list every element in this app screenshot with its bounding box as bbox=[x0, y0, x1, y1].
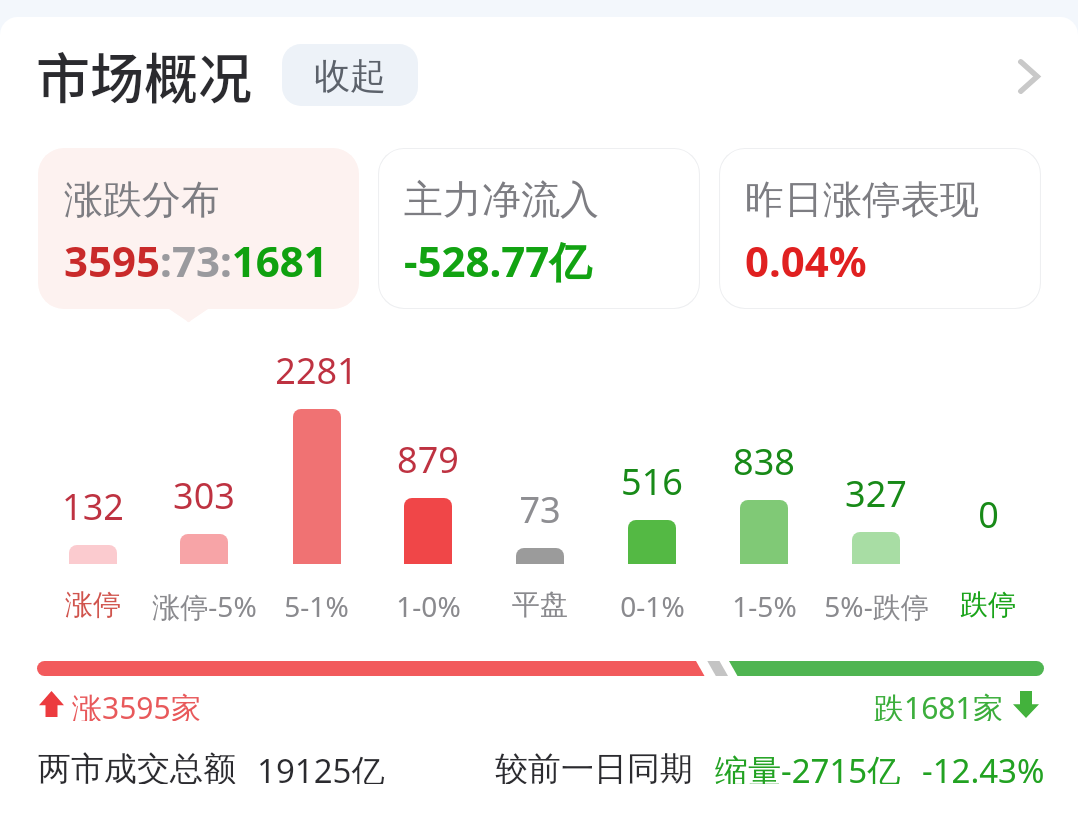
button[interactable]: 516 bbox=[596, 335, 708, 606]
button[interactable]: 879 bbox=[372, 335, 484, 606]
button[interactable]: 838 bbox=[708, 335, 820, 606]
staticText: 主力净流入 bbox=[404, 175, 599, 224]
staticText: 1-0% bbox=[396, 587, 461, 625]
staticText: 0.04% bbox=[745, 232, 867, 289]
button[interactable]: 73 bbox=[484, 335, 596, 606]
staticText: 3595:73:1681 bbox=[64, 232, 328, 289]
staticText: 327 bbox=[845, 469, 907, 518]
staticText: 市场概况 bbox=[36, 36, 252, 110]
staticText: 0-1% bbox=[620, 587, 685, 625]
staticText: 132 bbox=[62, 482, 124, 531]
staticText: 收起 bbox=[314, 53, 386, 98]
staticText: 涨停-5% bbox=[152, 587, 257, 625]
button[interactable]: 收起 bbox=[282, 44, 418, 106]
staticText: 涨3595家 bbox=[72, 687, 201, 721]
button[interactable]: 132 bbox=[37, 335, 148, 606]
staticText: 19125亿 bbox=[257, 748, 385, 784]
button[interactable]: 涨跌分布 bbox=[38, 148, 359, 309]
staticText: 516 bbox=[621, 457, 683, 506]
staticText: -12.43% bbox=[922, 748, 1045, 784]
staticText: 5-1% bbox=[284, 587, 349, 625]
button[interactable]: 主力净流入 bbox=[378, 148, 700, 309]
button[interactable]: More bbox=[1001, 52, 1057, 108]
staticText: 缩量-2715亿 bbox=[715, 748, 901, 784]
staticText: 73 bbox=[519, 485, 561, 534]
staticText: 838 bbox=[733, 437, 795, 486]
staticText: 昨日涨停表现 bbox=[745, 175, 979, 224]
staticText: 2281 bbox=[275, 346, 358, 395]
button[interactable]: 2281 bbox=[260, 335, 372, 606]
button[interactable]: 303 bbox=[148, 335, 260, 606]
staticText: 两市成交总额 bbox=[38, 748, 236, 784]
staticText: 0 bbox=[978, 490, 999, 539]
staticText: 5%-跌停 bbox=[824, 587, 929, 625]
staticText: -528.77亿 bbox=[404, 232, 592, 289]
staticText: 跌停 bbox=[960, 587, 1016, 622]
button[interactable]: 0 bbox=[932, 335, 1044, 606]
staticText: 平盘 bbox=[512, 587, 568, 622]
staticText: 跌1681家 bbox=[874, 687, 1003, 721]
staticText: 303 bbox=[173, 471, 235, 520]
staticText: 1-5% bbox=[732, 587, 797, 625]
staticText: 涨停 bbox=[65, 587, 121, 622]
staticText: 涨跌分布 bbox=[64, 175, 220, 224]
button[interactable]: 昨日涨停表现 bbox=[719, 148, 1041, 309]
button[interactable]: 327 bbox=[820, 335, 932, 606]
staticText: 879 bbox=[397, 435, 459, 484]
staticText: 较前一日同期 bbox=[495, 748, 693, 784]
